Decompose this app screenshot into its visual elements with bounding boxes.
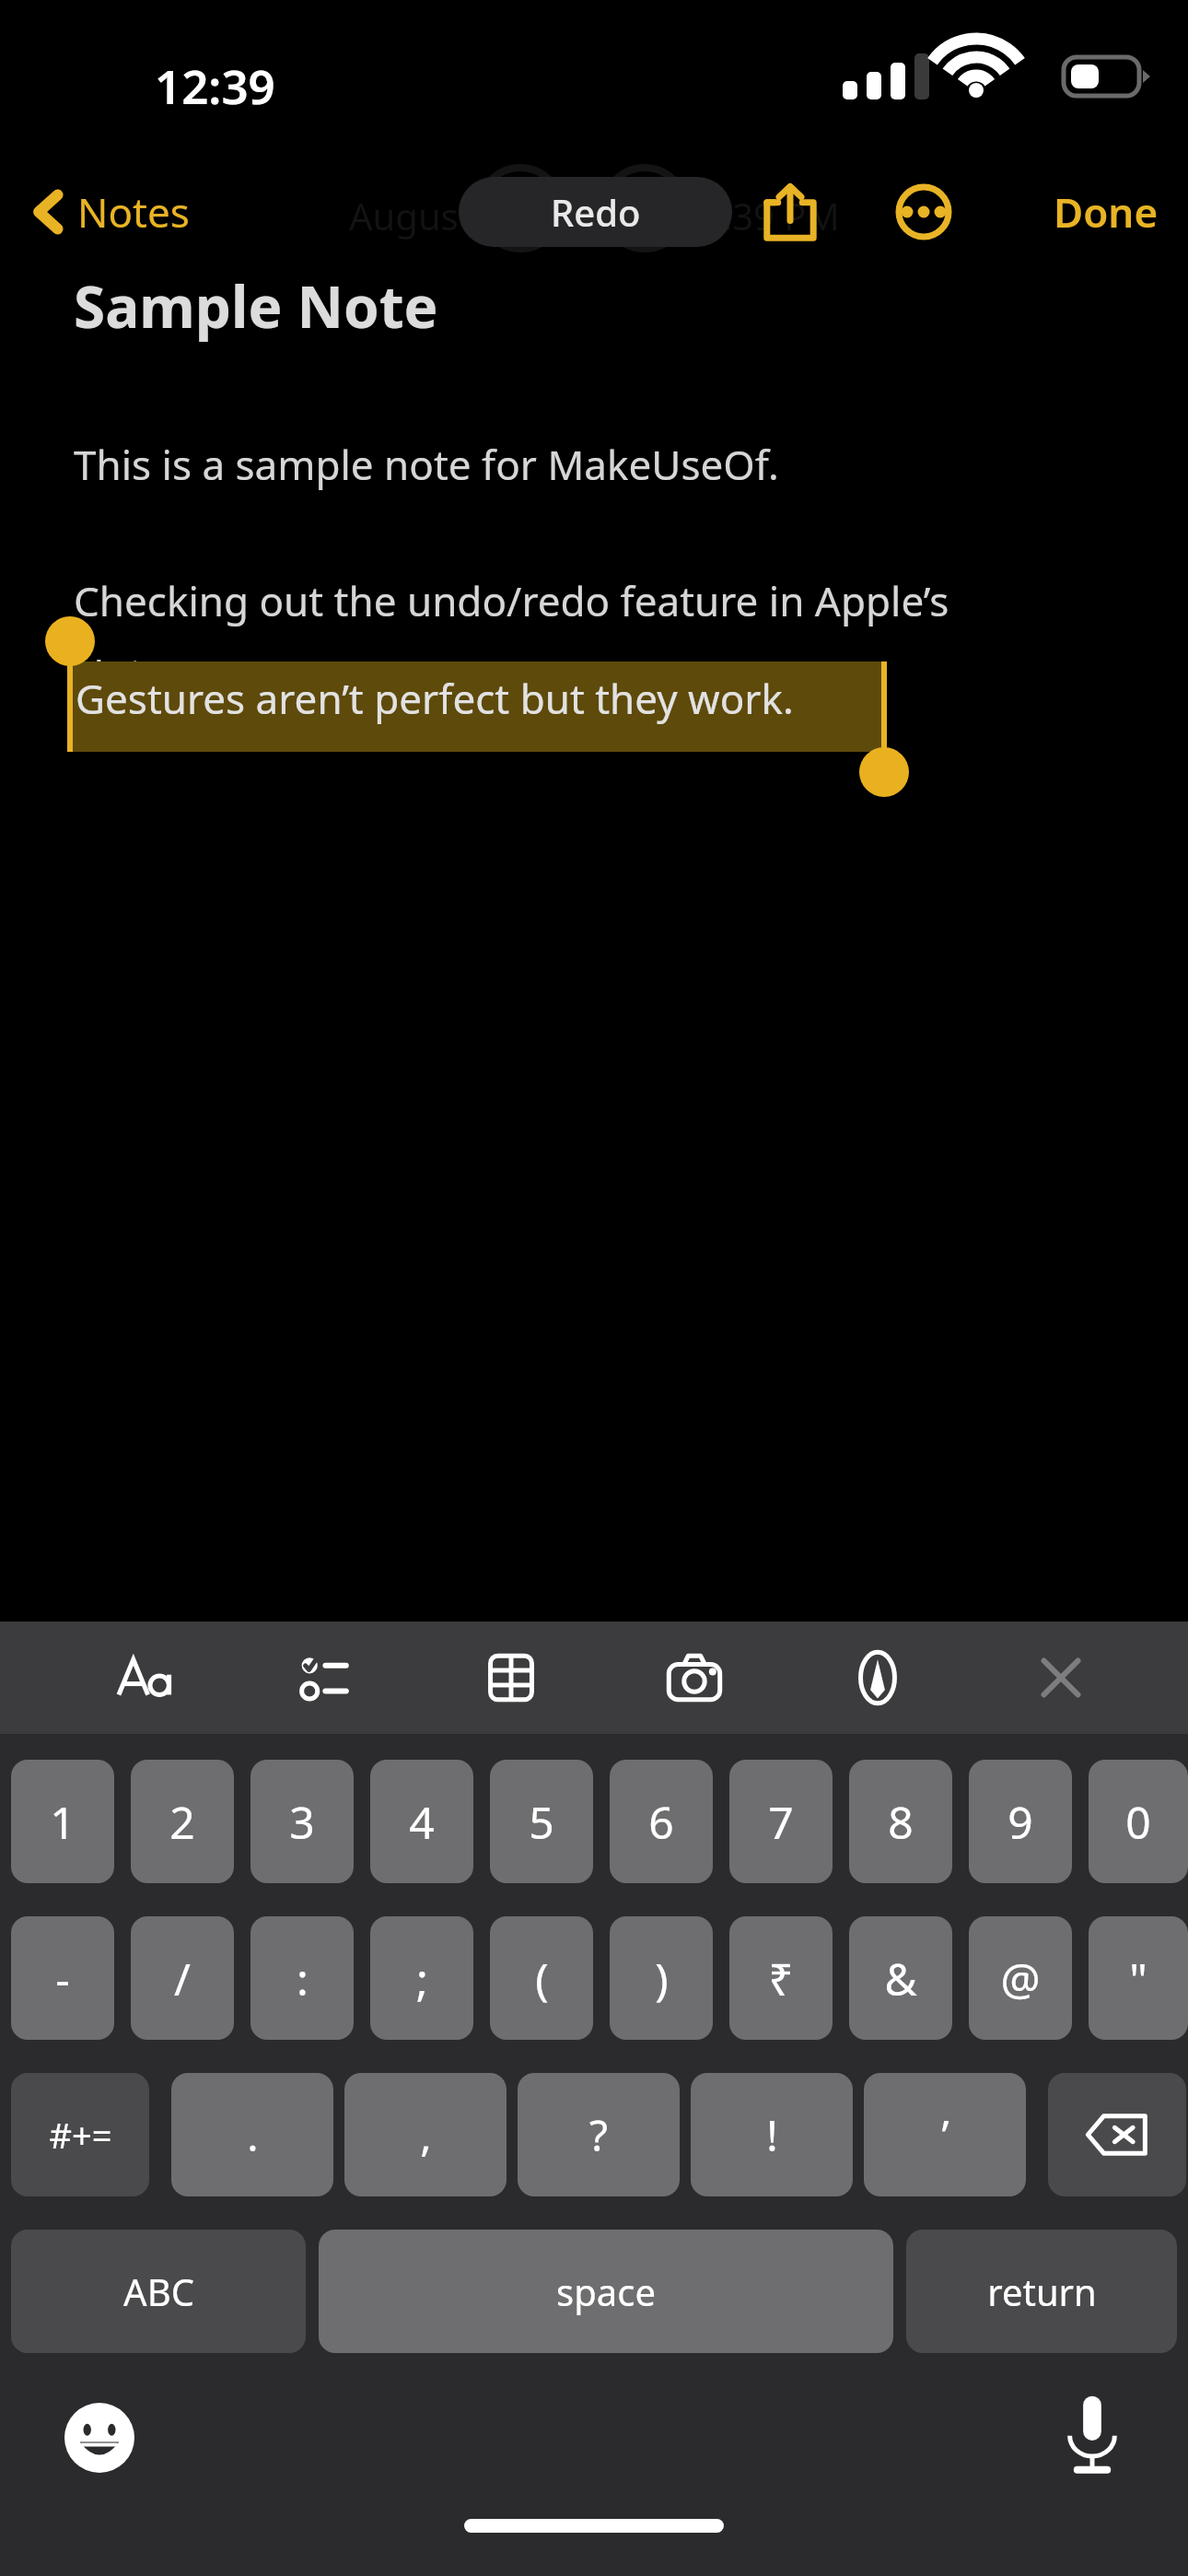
button[interactable]: 8 bbox=[849, 1760, 952, 1883]
staticText: " bbox=[1129, 1949, 1147, 2008]
button[interactable]: #+= bbox=[11, 2073, 149, 2196]
button[interactable]: 3 bbox=[250, 1760, 354, 1883]
button[interactable]: 9 bbox=[969, 1760, 1072, 1883]
button[interactable]: - bbox=[11, 1916, 114, 2040]
button[interactable]: , bbox=[344, 2073, 507, 2196]
staticText: ) bbox=[655, 1949, 669, 2008]
button[interactable]: Redo bbox=[459, 177, 732, 247]
button[interactable]: & bbox=[849, 1916, 952, 2040]
button[interactable]: 6 bbox=[610, 1760, 713, 1883]
button[interactable]: Text format bbox=[101, 1633, 190, 1722]
button[interactable]: More options bbox=[879, 168, 968, 256]
button[interactable]: 1 bbox=[11, 1760, 114, 1883]
button[interactable]: 2 bbox=[131, 1760, 234, 1883]
button[interactable]: ABC bbox=[11, 2230, 306, 2353]
staticText: Sample Note bbox=[74, 267, 438, 345]
staticText: space bbox=[556, 2266, 656, 2316]
button[interactable]: space bbox=[319, 2230, 893, 2353]
button[interactable]: 5 bbox=[490, 1760, 593, 1883]
staticText: 9 bbox=[1007, 1792, 1033, 1852]
button[interactable]: 4 bbox=[370, 1760, 473, 1883]
button[interactable]: @ bbox=[969, 1916, 1072, 2040]
staticText: . bbox=[247, 2106, 259, 2164]
button[interactable]: 7 bbox=[729, 1760, 833, 1883]
staticText: Notes bbox=[77, 184, 190, 240]
staticText: 5 bbox=[529, 1792, 554, 1852]
staticText: : bbox=[297, 1949, 309, 2008]
button[interactable]: ( bbox=[490, 1916, 593, 2040]
button[interactable]: Share bbox=[746, 168, 834, 256]
staticText: 12:39 bbox=[155, 53, 275, 117]
staticText: 3 bbox=[289, 1792, 315, 1852]
button[interactable]: Done bbox=[1044, 177, 1168, 247]
button[interactable]: Backspace bbox=[1048, 2073, 1186, 2196]
staticText: 7 bbox=[768, 1792, 794, 1852]
button[interactable]: Emoji bbox=[55, 2394, 144, 2482]
button[interactable]: 0 bbox=[1089, 1760, 1188, 1883]
staticText: ’ bbox=[941, 2106, 949, 2164]
button[interactable]: Dictation bbox=[1048, 2390, 1136, 2478]
staticText: @ bbox=[1000, 1949, 1041, 2008]
button[interactable]: ’ bbox=[864, 2073, 1026, 2196]
staticText: , bbox=[420, 2106, 432, 2164]
staticText: 4 bbox=[409, 1792, 435, 1852]
staticText: Checking out the undo/redo feature in Ap… bbox=[74, 573, 949, 700]
button[interactable]: . bbox=[171, 2073, 333, 2196]
staticText: 6 bbox=[648, 1792, 674, 1852]
button[interactable]: ; bbox=[370, 1916, 473, 2040]
button[interactable]: / bbox=[131, 1916, 234, 2040]
staticText: Gestures aren’t perfect but they work. bbox=[76, 671, 794, 726]
button[interactable]: Table bbox=[467, 1633, 555, 1722]
staticText: ; bbox=[416, 1949, 428, 2008]
button[interactable]: ) bbox=[610, 1916, 713, 2040]
staticText: 1 bbox=[50, 1792, 76, 1852]
staticText: ABC bbox=[123, 2266, 194, 2316]
button[interactable]: ₹ bbox=[729, 1916, 833, 2040]
button[interactable]: return bbox=[906, 2230, 1177, 2353]
staticText: 2 bbox=[169, 1792, 195, 1852]
staticText: return bbox=[987, 2266, 1097, 2316]
staticText: / bbox=[174, 1949, 191, 2008]
button[interactable]: Close keyboard bbox=[1017, 1633, 1105, 1722]
button[interactable]: Camera bbox=[650, 1633, 739, 1722]
staticText: - bbox=[55, 1949, 70, 2008]
staticText: This is a sample note for MakeUseOf. bbox=[74, 437, 779, 492]
button[interactable]: : bbox=[250, 1916, 354, 2040]
staticText: ₹ bbox=[768, 1949, 794, 2008]
staticText: Done bbox=[1054, 184, 1159, 240]
button[interactable]: Markup bbox=[833, 1633, 922, 1722]
button[interactable]: ? bbox=[518, 2073, 680, 2196]
staticText: ( bbox=[535, 1949, 549, 2008]
staticText: #+= bbox=[49, 2111, 112, 2159]
staticText: & bbox=[884, 1949, 917, 2008]
button[interactable]: Checklist bbox=[284, 1633, 372, 1722]
staticText: 0 bbox=[1125, 1792, 1151, 1852]
button[interactable]: " bbox=[1089, 1916, 1188, 2040]
staticText: Redo bbox=[551, 187, 641, 237]
button[interactable]: Notes bbox=[22, 177, 201, 247]
staticText: ! bbox=[766, 2106, 778, 2164]
staticText: ? bbox=[589, 2106, 608, 2164]
staticText: August 22, 2023 at 12:39 PM bbox=[349, 191, 840, 240]
button[interactable]: ! bbox=[691, 2073, 853, 2196]
staticText: 8 bbox=[888, 1792, 914, 1852]
